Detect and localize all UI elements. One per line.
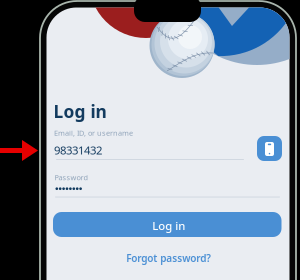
staticText: Password <box>54 172 88 182</box>
staticText: Email, ID, or username <box>54 128 133 138</box>
button[interactable]: Log in <box>0 0 300 280</box>
staticText: Forgot password? <box>126 251 211 265</box>
staticText: Log in <box>152 218 185 233</box>
button[interactable]: Forgot password? <box>0 0 300 280</box>
staticText: 98331432 <box>54 142 102 158</box>
staticText: Log in <box>53 99 106 123</box>
button[interactable]: Sign in with device <box>0 0 300 280</box>
